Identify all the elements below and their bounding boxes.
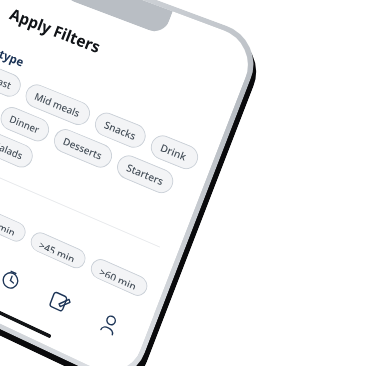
button[interactable]: Dinner: [0, 103, 53, 145]
staticText: Apply Filters: [7, 3, 104, 58]
button[interactable]: Back: [0, 0, 12, 24]
button[interactable]: >30 min: [0, 203, 29, 245]
button[interactable]: Soups and Salads: [0, 111, 36, 171]
staticText: Soups and Salads: [0, 119, 26, 163]
button[interactable]: Drinks: [147, 132, 202, 173]
button[interactable]: Profile: [80, 293, 139, 355]
staticText: Snacks: [102, 117, 138, 143]
staticText: Desserts: [61, 134, 105, 163]
button[interactable]: Mid meals: [22, 81, 93, 129]
button[interactable]: Timer: [0, 249, 39, 309]
button[interactable]: Starters: [113, 152, 177, 197]
staticText: >30 min: [0, 212, 18, 236]
button[interactable]: >60 min: [88, 256, 150, 299]
staticText: Drinks: [158, 140, 190, 164]
button[interactable]: Desserts: [50, 125, 116, 171]
staticText: Mid meals: [33, 89, 83, 120]
staticText: Meal type: [0, 34, 27, 70]
button[interactable]: Notes: [30, 271, 88, 331]
staticText: Breakfast: [0, 63, 14, 92]
button[interactable]: Snacks: [91, 109, 149, 152]
staticText: >45 min: [38, 238, 77, 263]
button[interactable]: >45 min: [28, 229, 89, 272]
staticText: Starters: [125, 160, 165, 188]
button[interactable]: Breakfast: [0, 55, 24, 100]
staticText: >60 min: [99, 264, 139, 290]
staticText: Dinner: [8, 112, 42, 137]
